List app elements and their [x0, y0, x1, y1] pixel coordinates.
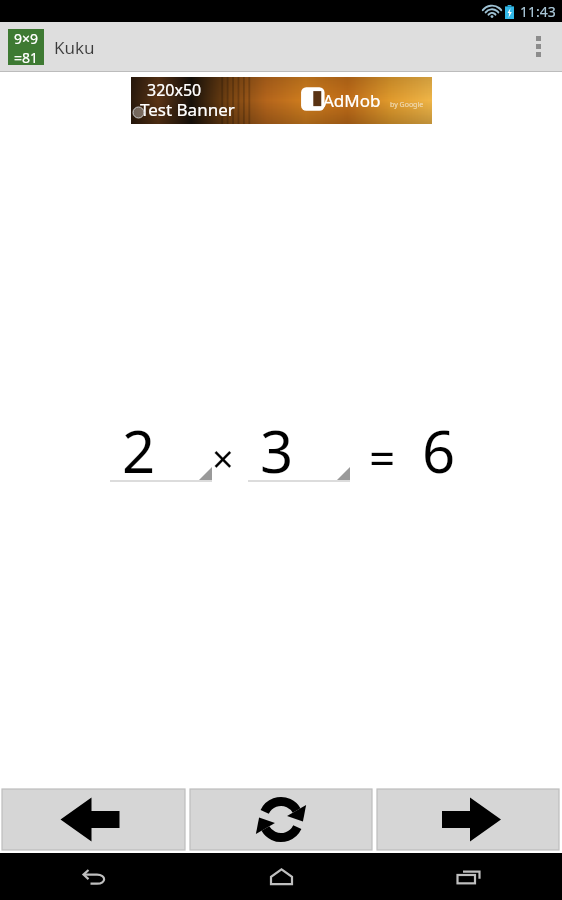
button[interactable]: Previous [2, 789, 185, 850]
button[interactable]: Refresh [190, 789, 372, 850]
staticText: 3 [260, 411, 294, 483]
button[interactable]: 2 [110, 410, 212, 482]
staticText: 320x50 [147, 79, 202, 101]
staticText: Kuku [54, 36, 95, 59]
button[interactable]: More options [514, 22, 562, 71]
button[interactable]: Home [188, 853, 375, 900]
button[interactable]: 3 [248, 410, 350, 482]
staticText: by Google [390, 100, 424, 110]
staticText: 9×9 [14, 29, 39, 48]
staticText: × [212, 432, 234, 484]
button[interactable]: Recent apps [375, 853, 562, 900]
staticText: Test Banner [140, 98, 235, 121]
button[interactable]: Advertisement [131, 77, 432, 124]
staticText: 11:43 [520, 2, 556, 21]
button[interactable]: Back [0, 853, 188, 900]
button[interactable]: Kuku app icon [8, 29, 44, 65]
staticText: AdMob [323, 89, 381, 112]
staticText: = [369, 426, 396, 489]
staticText: 2 [122, 411, 156, 483]
staticText: 6 [422, 411, 456, 490]
button[interactable]: Next [377, 789, 559, 850]
staticText: =81 [14, 48, 39, 65]
